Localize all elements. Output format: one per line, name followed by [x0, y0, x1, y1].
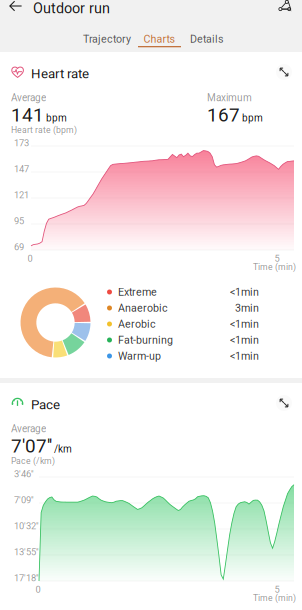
staticText: 7'09'' — [14, 494, 34, 505]
staticText: Anaerobic — [118, 302, 168, 314]
staticText: Trajectory — [83, 33, 131, 45]
staticText: 13'55'' — [14, 546, 39, 557]
staticText: <1min — [230, 286, 259, 298]
staticText: bpm — [46, 112, 67, 124]
staticText: Maximum — [207, 92, 252, 104]
staticText: 3'46'' — [14, 468, 34, 479]
button[interactable]: Trajectory — [81, 29, 133, 49]
staticText: Heart rate (bpm) — [11, 125, 77, 135]
button[interactable]: Charts — [138, 29, 181, 49]
button[interactable]: Expand pace chart — [276, 395, 292, 411]
button[interactable]: Share — [272, 0, 298, 16]
staticText: 95 — [14, 215, 24, 226]
staticText: Warm-up — [118, 350, 161, 362]
button[interactable]: Details — [185, 29, 229, 49]
staticText: Fat-burning — [118, 334, 173, 346]
button[interactable]: Back — [3, 0, 29, 16]
staticText: 69 — [14, 241, 24, 252]
staticText: Outdoor run — [33, 0, 110, 17]
staticText: Charts — [143, 33, 175, 45]
staticText: bpm — [242, 112, 263, 124]
staticText: 3min — [235, 302, 259, 314]
staticText: <1min — [230, 350, 259, 362]
staticText: <1min — [230, 334, 259, 346]
staticText: Pace (/km) — [11, 456, 55, 466]
staticText: Time (min) — [253, 593, 296, 603]
button[interactable]: Expand heart rate chart — [276, 64, 292, 80]
staticText: 121 — [14, 189, 29, 200]
staticText: /km — [54, 443, 72, 455]
staticText: Average — [11, 423, 46, 435]
staticText: Aerobic — [118, 318, 156, 330]
staticText: 5 — [274, 253, 279, 264]
staticText: 147 — [14, 163, 29, 174]
staticText: 0 — [27, 253, 32, 264]
staticText: 173 — [14, 137, 29, 148]
staticText: 17'18'' — [14, 572, 39, 583]
staticText: 7'07'' — [11, 435, 52, 457]
staticText: 0 — [35, 584, 40, 595]
staticText: Time (min) — [253, 262, 296, 272]
staticText: 167 — [207, 104, 240, 126]
staticText: 5 — [274, 584, 279, 595]
staticText: Pace — [31, 397, 60, 413]
staticText: Extreme — [118, 286, 157, 298]
staticText: 141 — [11, 104, 44, 126]
staticText: <1min — [230, 318, 259, 330]
staticText: Details — [190, 33, 224, 45]
staticText: 10'32'' — [14, 520, 39, 531]
staticText: Heart rate — [31, 66, 89, 82]
staticText: Average — [11, 92, 46, 104]
